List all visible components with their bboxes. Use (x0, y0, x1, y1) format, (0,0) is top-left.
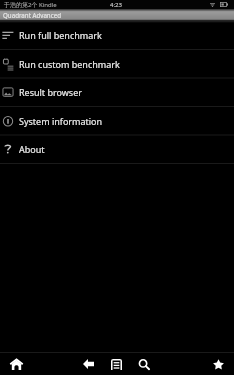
button[interactable]: Search (134, 353, 155, 375)
button[interactable]: Result browser (0, 78, 234, 106)
staticText: Quadrant Advanced (3, 11, 61, 19)
button[interactable]: Run custom benchmark (0, 50, 234, 78)
staticText: Run full benchmark (19, 29, 102, 41)
button[interactable]: Favorites (208, 353, 229, 375)
button[interactable]: System information (0, 107, 234, 135)
button[interactable]: Home (4, 353, 28, 375)
staticText: About (19, 143, 45, 155)
staticText: 于浩的第2个 Kindle (4, 1, 57, 9)
staticText: System information (19, 115, 103, 127)
staticText: Result browser (19, 86, 82, 98)
staticText: 4:23 (110, 1, 122, 9)
staticText: Run custom benchmark (19, 58, 120, 70)
button[interactable]: Run full benchmark (0, 21, 234, 49)
button[interactable]: About (0, 135, 234, 163)
button[interactable]: Menu (106, 353, 127, 375)
button[interactable]: Back (78, 353, 99, 375)
